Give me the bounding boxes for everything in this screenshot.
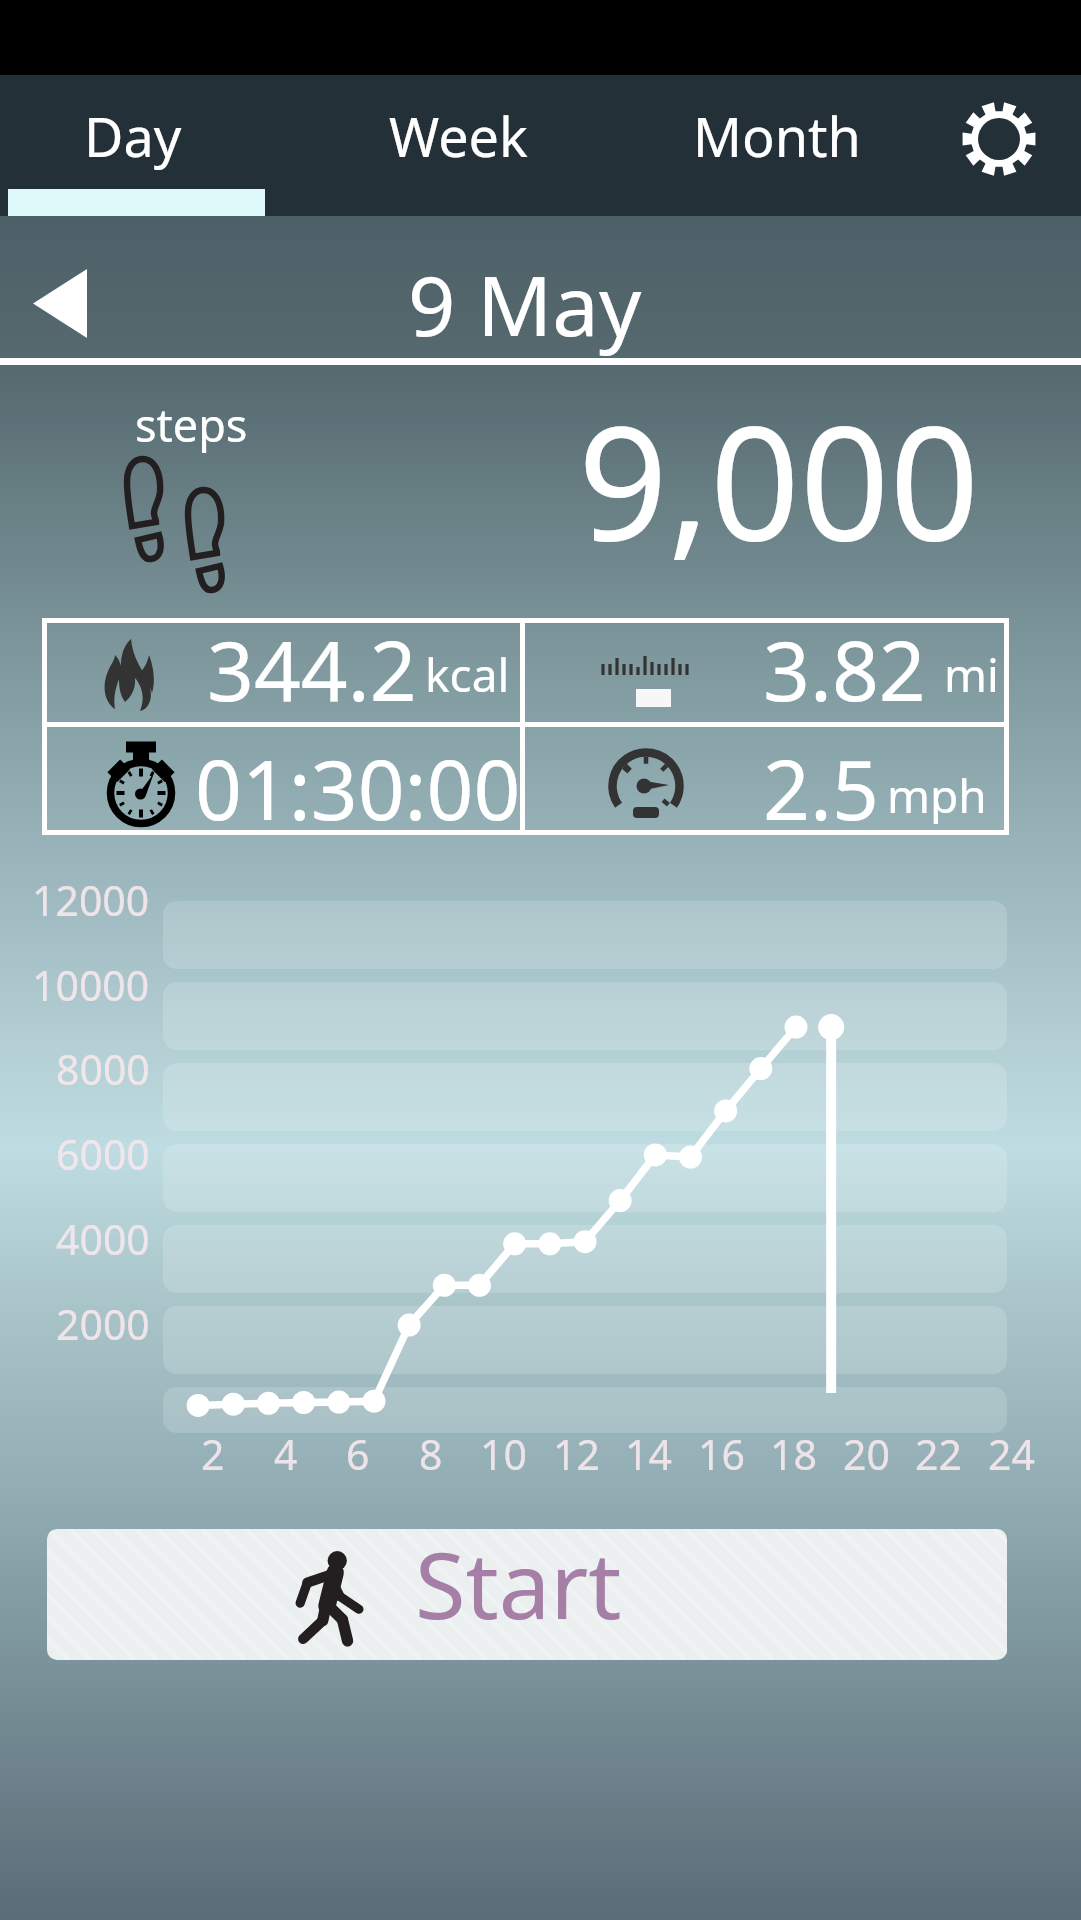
button[interactable]: Start bbox=[47, 1529, 1007, 1660]
staticText: 4000 bbox=[56, 1211, 150, 1267]
button[interactable]: 344.2 bbox=[42, 614, 525, 720]
staticText: 9,000 bbox=[578, 372, 980, 586]
staticText: mi bbox=[944, 643, 999, 706]
staticText: 01:30:00 bbox=[195, 732, 521, 840]
staticText: 18 bbox=[770, 1426, 817, 1482]
staticText: 344.2 bbox=[207, 613, 417, 719]
staticText: Week bbox=[389, 99, 528, 173]
button[interactable]: Week bbox=[266, 75, 651, 189]
staticText: 3.82 bbox=[763, 613, 926, 719]
staticText: 24 bbox=[988, 1426, 1035, 1482]
staticText: 10 bbox=[480, 1426, 527, 1482]
staticText: 14 bbox=[625, 1426, 672, 1482]
button[interactable]: Settings bbox=[910, 75, 1081, 189]
staticText: 2000 bbox=[56, 1296, 150, 1352]
staticText: 2.5 bbox=[763, 732, 879, 840]
button[interactable]: Day bbox=[0, 75, 266, 189]
staticText: 6 bbox=[346, 1426, 370, 1482]
staticText: 20 bbox=[843, 1426, 890, 1482]
staticText: mph bbox=[887, 764, 987, 827]
button[interactable]: 01:30:00 bbox=[42, 733, 525, 841]
staticText: 10000 bbox=[32, 957, 150, 1013]
staticText: Month bbox=[693, 99, 861, 173]
staticText: 22 bbox=[915, 1426, 962, 1482]
button[interactable]: 2.5 bbox=[525, 733, 1009, 841]
staticText: 12 bbox=[553, 1426, 600, 1482]
staticText: 9 May bbox=[408, 247, 642, 360]
staticText: 2 bbox=[201, 1426, 225, 1482]
staticText: Start bbox=[415, 1529, 622, 1646]
staticText: steps bbox=[135, 394, 248, 455]
staticText: Day bbox=[84, 99, 182, 173]
staticText: 4 bbox=[274, 1426, 298, 1482]
staticText: 8000 bbox=[56, 1041, 150, 1097]
button[interactable]: Month bbox=[651, 75, 903, 189]
staticText: 16 bbox=[698, 1426, 745, 1482]
button[interactable]: 3.82 bbox=[525, 614, 1009, 720]
staticText: 8 bbox=[419, 1426, 443, 1482]
staticText: kcal bbox=[425, 643, 510, 706]
staticText: 12000 bbox=[32, 872, 150, 928]
button[interactable]: Previous day bbox=[0, 216, 120, 365]
staticText: 6000 bbox=[56, 1126, 150, 1182]
